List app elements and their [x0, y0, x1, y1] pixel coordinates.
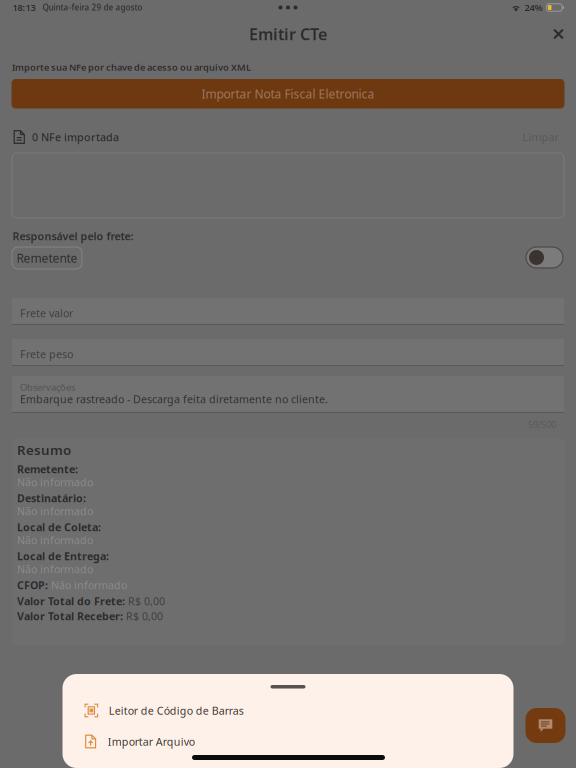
button[interactable]: Importar Arquivo — [62, 727, 513, 756]
staticText: Importe sua NFe por chave de acesso ou a… — [12, 61, 251, 73]
staticText: Remetente: — [17, 462, 78, 476]
staticText: 0 NFe importada — [32, 130, 119, 144]
staticText: R$ 0,00 — [126, 609, 163, 623]
button[interactable]: Fechar — [545, 21, 571, 47]
staticText: Remetente — [16, 250, 77, 266]
staticText: 18:13 — [12, 1, 35, 14]
staticText: Frete peso — [20, 347, 73, 361]
staticText: Embarque rastreado - Descarga feita dire… — [20, 392, 328, 406]
staticText: Não informado — [17, 562, 93, 576]
staticText: Limpar — [522, 130, 558, 144]
staticText: 24% — [525, 1, 543, 14]
button[interactable]: Importar Nota Fiscal Eletronica — [11, 79, 564, 108]
staticText: Resumo — [17, 441, 71, 459]
staticText: Não informado — [51, 578, 127, 592]
staticText: Local de Coleta: — [17, 520, 101, 534]
button[interactable]: Remetente — [12, 247, 82, 269]
button[interactable]: Alternar responsável — [526, 247, 563, 268]
button[interactable]: Suporte — [525, 708, 565, 743]
staticText: Frete valor — [20, 306, 73, 320]
staticText: Quinta-feira 29 de agosto — [42, 2, 142, 13]
staticText: Valor Total Receber: — [17, 609, 123, 623]
staticText: Não informado — [17, 475, 93, 489]
button[interactable]: Leitor de Código de Barras — [62, 696, 513, 725]
staticText: Emitir CTe — [249, 23, 327, 45]
staticText: Não informado — [17, 533, 93, 547]
staticText: 59/500 — [528, 418, 556, 430]
staticText: Responsável pelo frete: — [12, 229, 133, 243]
staticText: Destinatário: — [17, 491, 86, 505]
staticText: Valor Total do Frete: — [17, 594, 125, 608]
staticText: Não informado — [17, 504, 93, 518]
staticText: Local de Entrega: — [17, 549, 109, 563]
staticText: Importar Arquivo — [108, 734, 195, 749]
staticText: Leitor de Código de Barras — [109, 703, 244, 718]
staticText: Observações — [20, 381, 75, 393]
staticText: R$ 0,00 — [128, 594, 165, 608]
staticText: CFOP: — [17, 578, 48, 592]
button[interactable]: Limpar — [519, 127, 561, 147]
staticText: Importar Nota Fiscal Eletronica — [201, 86, 374, 102]
